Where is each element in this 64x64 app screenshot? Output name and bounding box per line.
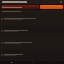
button[interactable]: More options: [0, 0, 64, 4]
button[interactable]: [0, 49, 64, 61]
button[interactable]: [0, 25, 64, 37]
button[interactable]: Home: [0, 61, 22, 64]
button[interactable]: Search: [22, 61, 43, 64]
button[interactable]: [0, 37, 64, 49]
button[interactable]: Highlight card: [40, 5, 63, 9]
button[interactable]: Library: [43, 61, 64, 64]
button[interactable]: [0, 12, 64, 25]
button[interactable]: Featured item: [1, 5, 39, 9]
